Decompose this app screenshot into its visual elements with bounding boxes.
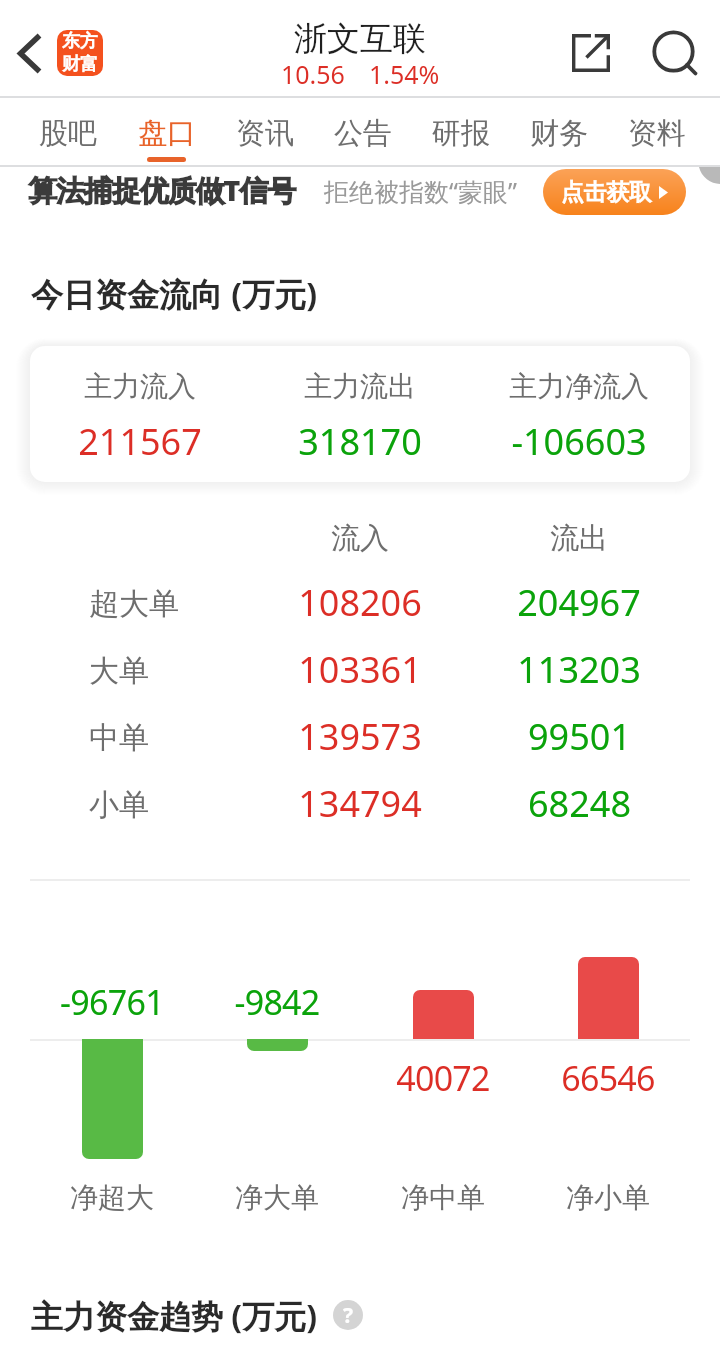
button[interactable] — [30, 770, 690, 837]
staticText: 211567 — [78, 417, 202, 466]
staticText: 大单 — [89, 652, 149, 690]
staticText: 103361 — [298, 645, 422, 694]
staticText: -9842 — [234, 979, 320, 1025]
staticText: 318170 — [298, 417, 422, 466]
staticText: 流出 — [550, 520, 608, 557]
button[interactable]: East Money — [57, 30, 103, 76]
staticText: 点击获取 — [561, 178, 652, 207]
button[interactable]: 公告 — [314, 98, 412, 167]
staticText: 净大单 — [235, 1180, 319, 1215]
button[interactable]: 点击获取 — [543, 169, 686, 215]
staticText: 财务 — [530, 115, 588, 152]
button[interactable]: 资讯 — [216, 98, 314, 167]
button[interactable]: 资料 — [608, 98, 706, 167]
staticText: 66546 — [561, 1055, 655, 1101]
staticText: 134794 — [298, 779, 422, 828]
staticText: 股吧 — [39, 115, 97, 152]
staticText: 东方 — [62, 30, 98, 53]
staticText: 净中单 — [401, 1180, 485, 1215]
button[interactable]: 财务 — [510, 98, 608, 167]
button[interactable] — [30, 703, 690, 770]
staticText: 超大单 — [89, 585, 179, 623]
staticText: 研报 — [432, 115, 490, 152]
button[interactable]: 股吧 — [18, 98, 117, 167]
button[interactable]: Share — [561, 23, 621, 83]
staticText: 主力净流入 — [509, 369, 649, 404]
staticText: 公告 — [334, 115, 392, 152]
staticText: 盘口 — [138, 115, 196, 152]
staticText: 108206 — [298, 578, 422, 627]
staticText: 小单 — [89, 786, 149, 824]
staticText: 68248 — [528, 779, 631, 828]
staticText: ? — [343, 1301, 354, 1330]
staticText: 净超大 — [70, 1180, 154, 1215]
button[interactable] — [30, 569, 690, 636]
staticText: 资讯 — [236, 115, 294, 152]
button[interactable]: Back — [1, 15, 57, 91]
staticText: 204967 — [517, 578, 641, 627]
staticText: 主力资金趋势 (万元) — [31, 1294, 318, 1338]
button[interactable]: Search — [643, 20, 703, 80]
staticText: 99501 — [528, 712, 631, 761]
staticText: 中单 — [89, 719, 149, 757]
staticText: 139573 — [298, 712, 422, 761]
staticText: -96761 — [60, 979, 164, 1025]
button[interactable]: 盘口 — [117, 98, 216, 167]
staticText: 主力流入 — [84, 369, 196, 404]
staticText: 40072 — [396, 1055, 490, 1101]
staticText: 资料 — [628, 115, 686, 152]
button[interactable]: Help — [333, 1300, 363, 1330]
staticText: 1.54% — [369, 57, 440, 91]
staticText: -106603 — [511, 417, 647, 466]
staticText: 浙文互联 — [294, 18, 426, 60]
staticText: 算法捕捉优质做T信号 — [28, 170, 296, 210]
button[interactable]: 研报 — [412, 98, 510, 167]
staticText: 主力流出 — [304, 369, 416, 404]
staticText: 113203 — [517, 645, 641, 694]
staticText: 财富 — [62, 53, 98, 76]
staticText: 净小单 — [566, 1180, 650, 1215]
staticText: 今日资金流向 (万元) — [31, 272, 318, 316]
staticText: 流入 — [331, 520, 389, 557]
button[interactable] — [30, 346, 690, 482]
staticText: 10.56 — [281, 57, 345, 91]
staticText: 拒绝被指数“蒙眼” — [324, 174, 517, 208]
button[interactable] — [30, 636, 690, 703]
